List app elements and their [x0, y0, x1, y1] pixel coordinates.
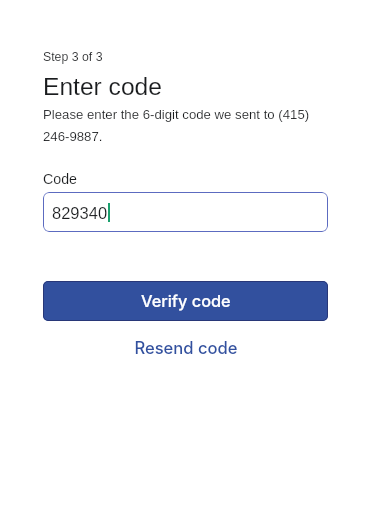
button[interactable]: Resend code — [128, 334, 244, 362]
staticText: Enter code — [43, 73, 162, 100]
staticText: Verify code — [141, 291, 231, 311]
staticText: 829340 — [52, 204, 108, 222]
staticText: Please enter the 6-digit code we sent to… — [43, 107, 328, 143]
staticText: Resend code — [134, 338, 238, 358]
button[interactable]: Code input field — [43, 192, 328, 232]
staticText: Step 3 of 3 — [43, 50, 103, 64]
staticText: Code — [43, 171, 77, 187]
button[interactable]: Verify code — [43, 281, 328, 321]
